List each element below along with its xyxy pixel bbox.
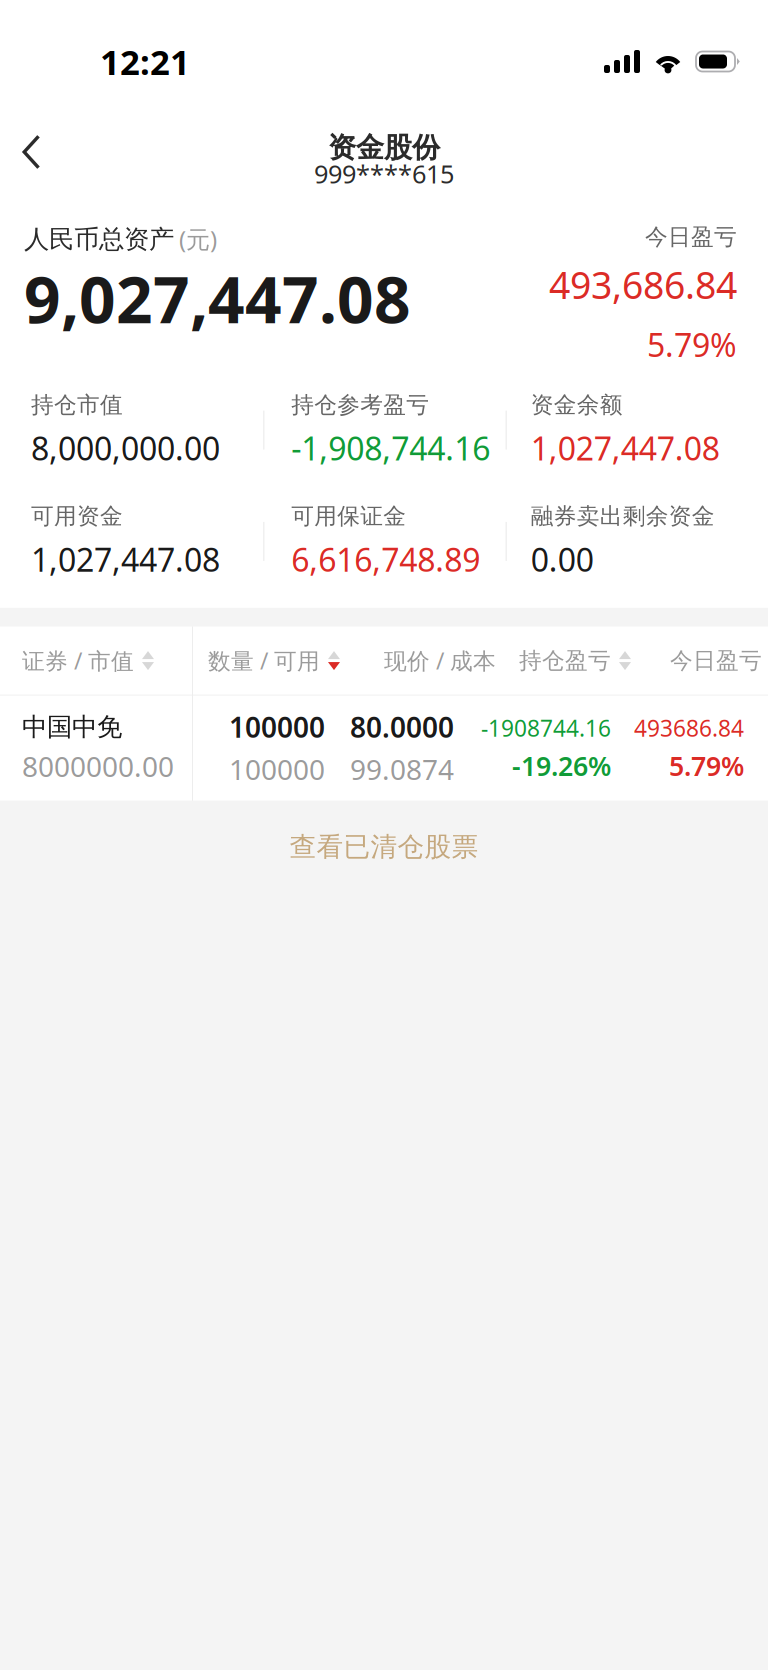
staticText: 可用保证金 xyxy=(291,502,406,530)
staticText: 今日盈亏 xyxy=(670,647,762,674)
staticText: 1,027,447.08 xyxy=(531,427,720,469)
staticText: 1,027,447.08 xyxy=(31,538,220,581)
staticText: 8,000,000.00 xyxy=(31,427,220,469)
staticText: 现价 / 成本 xyxy=(384,645,496,676)
staticText: (元) xyxy=(179,223,217,255)
staticText: 资金余额 xyxy=(531,391,623,419)
button[interactable]: Back xyxy=(0,126,63,177)
staticText: 493,686.84 xyxy=(549,260,737,309)
staticText: 可用资金 xyxy=(31,502,123,530)
staticText: -1908744.16 xyxy=(481,713,611,743)
button[interactable]: 查看已清仓股票 xyxy=(0,801,768,893)
staticText: 6,616,748.89 xyxy=(291,538,480,581)
staticText: 9,027,447.08 xyxy=(24,256,411,341)
staticText: 100000 xyxy=(229,751,325,788)
staticText: 融券卖出剩余资金 xyxy=(531,502,715,530)
staticText: 持仓市值 xyxy=(31,391,123,419)
staticText: 0.00 xyxy=(531,538,594,581)
staticText: 99.0874 xyxy=(350,751,454,788)
staticText: 999****615 xyxy=(314,157,454,190)
staticText: 80.0000 xyxy=(350,708,454,746)
staticText: 5.79% xyxy=(669,748,744,783)
staticText: 中国中免 xyxy=(22,711,122,742)
staticText: 100000 xyxy=(229,708,325,746)
staticText: 今日盈亏 xyxy=(645,223,737,251)
staticText: 持仓参考盈亏 xyxy=(291,391,429,419)
staticText: 查看已清仓股票 xyxy=(289,831,478,863)
staticText: -19.26% xyxy=(512,748,611,783)
staticText: 证券 / 市值 xyxy=(22,645,134,676)
staticText: 数量 / 可用 xyxy=(208,645,320,676)
staticText: 8000000.00 xyxy=(22,748,174,785)
staticText: 5.79% xyxy=(647,323,737,366)
staticText: 持仓盈亏 xyxy=(519,647,611,674)
staticText: 人民币总资产 xyxy=(24,224,174,255)
staticText: 493686.84 xyxy=(634,713,744,743)
staticText: -1,908,744.16 xyxy=(291,427,490,469)
staticText: 12:21 xyxy=(100,38,190,84)
staticText: 资金股份 xyxy=(328,130,440,165)
